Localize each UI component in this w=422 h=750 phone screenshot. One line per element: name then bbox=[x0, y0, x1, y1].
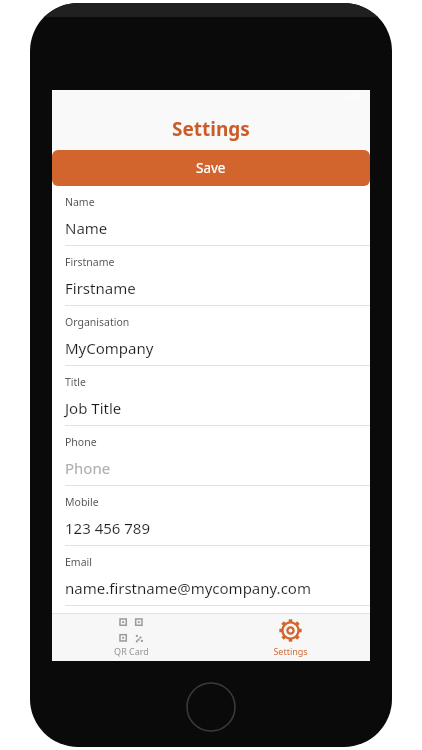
staticText: Organisation bbox=[65, 315, 130, 329]
staticText: MyCompany bbox=[65, 338, 154, 358]
staticText: Title bbox=[65, 375, 86, 389]
button[interactable]: Organisation bbox=[52, 306, 370, 366]
staticText: Job Title bbox=[65, 398, 122, 418]
button[interactable]: Mobile bbox=[52, 486, 370, 546]
button[interactable]: QR Card bbox=[52, 613, 211, 661]
staticText: Settings bbox=[273, 645, 308, 657]
staticText: Email bbox=[65, 555, 92, 569]
staticText: Settings bbox=[172, 116, 250, 142]
staticText: Save bbox=[196, 159, 226, 177]
staticText: Firstname bbox=[65, 278, 136, 298]
button[interactable]: Email bbox=[52, 546, 370, 606]
button[interactable]: Phone bbox=[52, 426, 370, 486]
staticText: 123 456 789 bbox=[65, 518, 151, 538]
staticText: Mobile bbox=[65, 495, 99, 509]
staticText: Firstname bbox=[65, 255, 115, 269]
button[interactable]: Name bbox=[52, 186, 370, 246]
button[interactable]: Settings bbox=[211, 613, 370, 661]
button[interactable]: Firstname bbox=[52, 246, 370, 306]
staticText: Name bbox=[65, 195, 95, 209]
staticText: Name bbox=[65, 218, 108, 238]
button[interactable]: Save bbox=[52, 150, 370, 186]
staticText: Phone bbox=[65, 458, 111, 478]
staticText: name.firstname@mycompany.com bbox=[65, 578, 311, 598]
staticText: QR Card bbox=[114, 645, 149, 657]
staticText: Phone bbox=[65, 435, 97, 449]
button[interactable]: Title bbox=[52, 366, 370, 426]
